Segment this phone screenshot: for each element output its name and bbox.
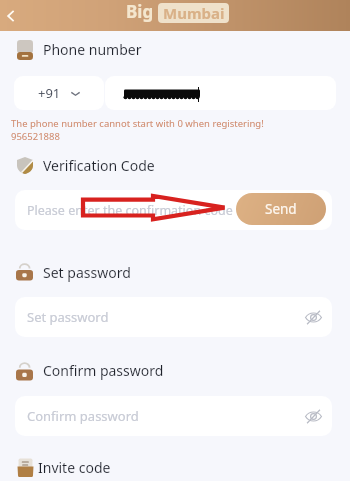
button[interactable]: Show password [305, 409, 322, 424]
button[interactable] [105, 76, 336, 110]
button[interactable]: Back [0, 0, 22, 31]
staticText: The phone number cannot start with 0 whe… [11, 117, 264, 130]
button[interactable]: Confirm password [15, 396, 332, 436]
button[interactable]: Set password [15, 297, 332, 337]
staticText: 956521888 [11, 130, 60, 143]
button[interactable]: Please enter the confirmation code [15, 190, 332, 230]
staticText: Send [265, 200, 297, 218]
staticText: Big [126, 0, 154, 23]
button[interactable]: Send [236, 193, 326, 225]
button[interactable] [16, 263, 33, 281]
button[interactable] [17, 40, 33, 60]
button[interactable] [17, 457, 34, 477]
staticText: Confirm password [27, 407, 139, 425]
staticText: Phone number [43, 40, 142, 59]
staticText: Verification Code [43, 156, 155, 175]
staticText: Mumbai [163, 3, 225, 23]
staticText: Please enter the confirmation code [27, 202, 233, 219]
button[interactable]: Show password [305, 310, 322, 325]
staticText: Confirm password [43, 361, 164, 380]
staticText: Set password [43, 263, 131, 282]
staticText: Invite code [38, 458, 111, 477]
staticText: +91 [38, 84, 61, 102]
button[interactable] [16, 362, 33, 381]
staticText: Set password [27, 308, 109, 326]
button[interactable]: +91 [14, 76, 104, 110]
button[interactable] [17, 157, 33, 174]
